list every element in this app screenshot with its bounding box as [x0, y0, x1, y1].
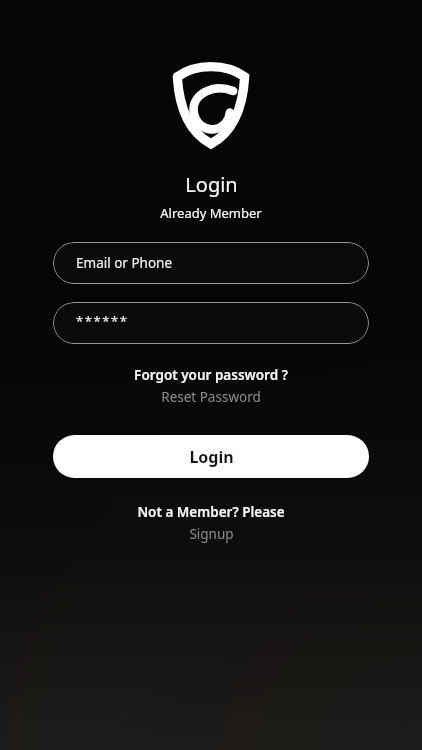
staticText: Already Member: [160, 204, 262, 222]
button[interactable]: Reset Password: [157, 387, 265, 407]
button[interactable]: ******: [53, 302, 369, 344]
staticText: Not a Member? Please: [137, 503, 285, 521]
staticText: Signup: [189, 525, 234, 543]
button[interactable]: Login: [53, 435, 369, 478]
staticText: Login: [185, 171, 238, 198]
staticText: Login: [189, 446, 234, 468]
other: App logo: [174, 62, 248, 146]
staticText: Forgot your password ?: [134, 366, 288, 384]
staticText: Email or Phone: [76, 254, 173, 272]
staticText: Reset Password: [161, 388, 261, 406]
button[interactable]: Email or Phone: [53, 242, 369, 284]
staticText: ******: [76, 312, 129, 330]
button[interactable]: Signup: [185, 524, 238, 544]
